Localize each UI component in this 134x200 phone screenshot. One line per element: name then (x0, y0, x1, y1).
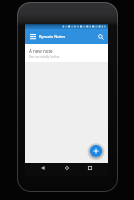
staticText: A new note (29, 48, 53, 54)
button[interactable]: Search (95, 31, 106, 42)
button[interactable]: Back (38, 163, 48, 173)
button[interactable]: Add note (90, 145, 102, 157)
button[interactable]: A new note (25, 44, 108, 62)
button[interactable]: Menu (27, 31, 38, 42)
staticText: Rymate Notes (39, 34, 95, 39)
button[interactable]: Recents (85, 163, 95, 173)
staticText: You are totally further (29, 55, 60, 59)
button[interactable]: Home (62, 163, 72, 173)
